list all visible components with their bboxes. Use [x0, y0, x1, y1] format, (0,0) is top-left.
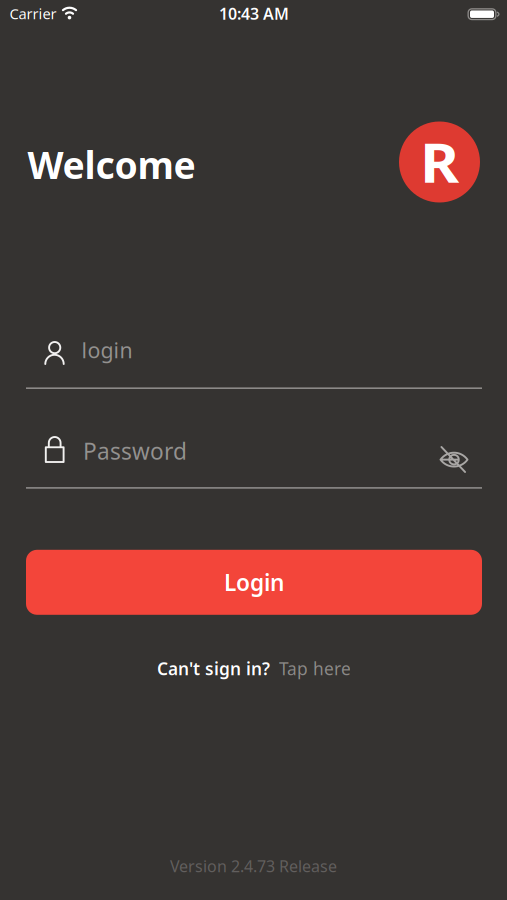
staticText: Password [83, 436, 187, 466]
staticText: Welcome [27, 140, 195, 189]
staticText: Login [224, 567, 284, 597]
button[interactable]: Can't sign in? [157, 657, 351, 680]
staticText: 10:43 AM [219, 3, 289, 24]
staticText: Carrier [9, 4, 56, 23]
staticText: R [422, 127, 457, 197]
staticText: Version 2.4.73 Release [170, 855, 337, 877]
staticText: Can't sign in? [157, 657, 270, 680]
staticText: login [81, 336, 132, 364]
button[interactable]: Login [26, 550, 482, 615]
staticText: Tap here [279, 657, 351, 680]
button[interactable]: Show password [440, 447, 467, 472]
